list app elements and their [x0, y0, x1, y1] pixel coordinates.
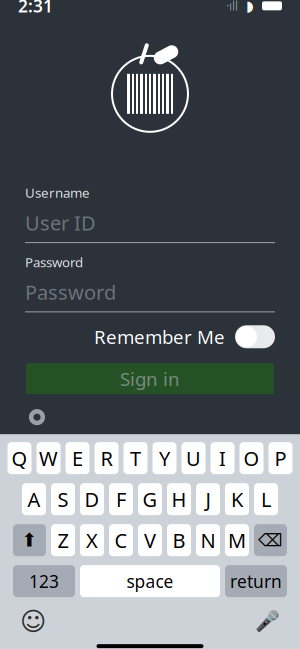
button[interactable]: L — [254, 483, 278, 515]
button[interactable]: H — [167, 483, 191, 515]
button[interactable]: T — [123, 442, 147, 474]
button[interactable]: P — [268, 442, 292, 474]
staticText: ⬆ — [21, 530, 37, 551]
staticText: E — [72, 445, 83, 471]
staticText: Remember Me — [94, 324, 225, 349]
button[interactable]: ⬆ — [13, 524, 46, 556]
staticText: X — [86, 527, 98, 553]
button[interactable]: V — [138, 524, 162, 556]
staticText: D — [84, 486, 99, 512]
staticText: 2:31 — [18, 0, 53, 17]
button[interactable]: E — [65, 442, 89, 474]
button[interactable]: ⌫ — [254, 524, 287, 556]
button[interactable]: Sign in — [26, 363, 274, 394]
button[interactable]: return — [225, 565, 287, 597]
staticText: space — [126, 570, 173, 593]
button[interactable]: K — [225, 483, 249, 515]
staticText: Password — [25, 279, 116, 305]
button[interactable]: G — [138, 483, 162, 515]
button[interactable]: D — [80, 483, 104, 515]
button[interactable]: R — [94, 442, 118, 474]
button[interactable]: Emoji — [20, 607, 46, 636]
staticText: Password — [25, 253, 83, 271]
button[interactable]: M — [225, 524, 249, 556]
staticText: Sign in — [120, 366, 180, 391]
staticText: I — [219, 445, 226, 471]
button[interactable]: 123 — [13, 565, 75, 597]
button[interactable]: C — [109, 524, 133, 556]
button[interactable]: Q — [7, 442, 31, 474]
button[interactable]: N — [196, 524, 220, 556]
staticText: R — [100, 445, 112, 471]
staticText: N — [200, 527, 215, 553]
staticText: H — [171, 486, 186, 512]
button[interactable]: W — [36, 442, 60, 474]
staticText: U — [186, 445, 201, 471]
staticText: Z — [57, 527, 68, 553]
button[interactable]: S — [51, 483, 75, 515]
staticText: Y — [159, 445, 170, 471]
staticText: T — [130, 445, 141, 471]
staticText: C — [114, 527, 127, 553]
staticText: A — [27, 486, 40, 512]
button[interactable]: Remember Me — [0, 312, 300, 349]
button[interactable]: B — [167, 524, 191, 556]
staticText: O — [243, 445, 259, 471]
button[interactable]: Z — [51, 524, 75, 556]
button[interactable]: Dictate — [255, 610, 280, 633]
staticText: ⌫ — [258, 530, 283, 550]
staticText: Username — [25, 184, 90, 201]
staticText: P — [274, 445, 286, 471]
button[interactable]: J — [196, 483, 220, 515]
staticText: return — [230, 570, 282, 593]
staticText: B — [172, 527, 185, 553]
staticText: 123 — [29, 570, 59, 593]
staticText: ◗ — [246, 0, 254, 14]
staticText: V — [144, 527, 156, 553]
button[interactable]: U — [181, 442, 205, 474]
button[interactable]: O — [239, 442, 263, 474]
staticText: ·ıll — [226, 0, 238, 14]
staticText: M — [228, 527, 246, 553]
staticText: S — [57, 486, 68, 512]
staticText: ☺ — [20, 607, 46, 636]
button[interactable]: Settings — [0, 394, 300, 426]
staticText: K — [231, 486, 243, 512]
staticText: Q — [11, 445, 27, 471]
button[interactable]: I — [210, 442, 234, 474]
button[interactable]: A — [22, 483, 46, 515]
button[interactable]: space — [80, 565, 220, 597]
button[interactable]: Y — [152, 442, 176, 474]
button[interactable]: X — [80, 524, 104, 556]
staticText: J — [205, 486, 210, 512]
staticText: W — [39, 445, 58, 471]
staticText: F — [116, 486, 126, 512]
staticText: 🎤 — [255, 610, 280, 633]
staticText: G — [142, 486, 157, 512]
staticText: User ID — [25, 209, 96, 236]
staticText: L — [261, 486, 271, 512]
button[interactable]: F — [109, 483, 133, 515]
